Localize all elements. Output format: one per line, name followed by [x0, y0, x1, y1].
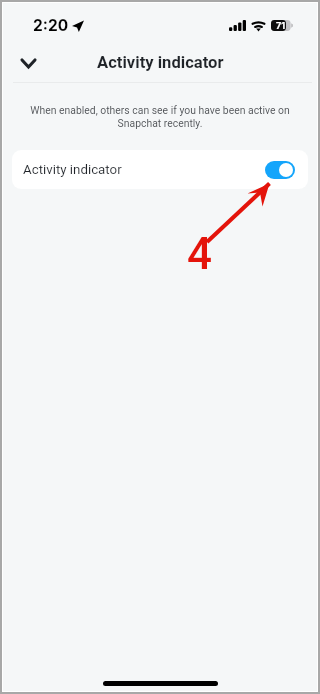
button[interactable]: Activity indicator — [12, 150, 308, 189]
staticText: When enabled, others can see if you have… — [23, 104, 297, 129]
button[interactable]: Collapse — [13, 48, 43, 78]
staticText: 4 — [187, 228, 213, 280]
staticText: 2:20 — [33, 16, 69, 35]
staticText: Activity indicator — [97, 53, 224, 72]
staticText: 71 — [276, 20, 286, 31]
staticText: Activity indicator — [23, 162, 122, 178]
